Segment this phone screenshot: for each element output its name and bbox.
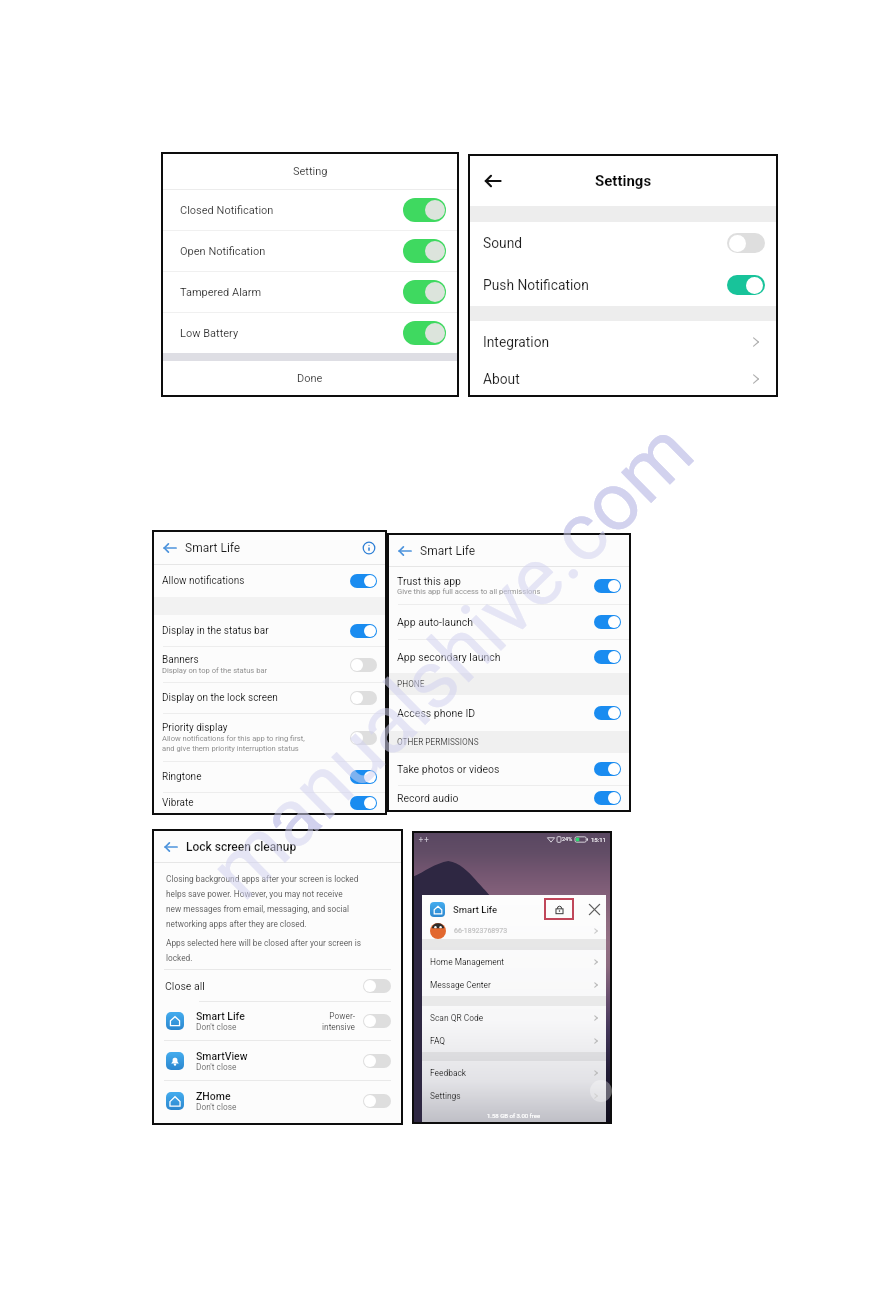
staticText: Record audio: [397, 792, 459, 804]
button[interactable]: Feedback: [422, 1061, 606, 1084]
staticText: 1.58 GB of 3.00 free: [487, 1112, 541, 1119]
staticText: SmartView: [196, 1050, 248, 1062]
button[interactable]: [363, 1094, 391, 1108]
button[interactable]: Back: [163, 839, 179, 855]
button[interactable]: Push Notification: [470, 264, 776, 306]
staticText: Closed Notification: [180, 204, 403, 217]
staticText: Done: [297, 372, 323, 385]
button[interactable]: Info: [362, 541, 376, 555]
button[interactable]: [350, 658, 377, 672]
button[interactable]: ZHome: [154, 1081, 401, 1120]
staticText: ZHome: [196, 1090, 231, 1102]
button[interactable]: [350, 770, 377, 784]
button[interactable]: [350, 691, 377, 705]
button[interactable]: About: [470, 363, 776, 395]
staticText: Feedback: [430, 1068, 592, 1078]
button[interactable]: [350, 731, 377, 745]
button[interactable]: [403, 280, 446, 304]
button[interactable]: Access phone ID: [389, 695, 629, 731]
button[interactable]: SmartView: [154, 1041, 401, 1080]
button[interactable]: Display in the status bar: [154, 615, 385, 646]
staticText: Ringtone: [162, 771, 202, 783]
staticText: Settings: [430, 1091, 592, 1101]
staticText: Settings: [595, 172, 652, 190]
button[interactable]: Message Center: [422, 974, 606, 996]
staticText: Setting: [293, 165, 328, 178]
button[interactable]: Tampered Alarm: [163, 272, 457, 312]
button[interactable]: Vibrate: [154, 793, 385, 813]
staticText: App secondary launch: [397, 651, 501, 663]
staticText: Sound: [483, 235, 727, 251]
staticText: PHONE: [397, 679, 425, 689]
staticText: 24%: [562, 836, 573, 842]
button[interactable]: Banners: [154, 647, 385, 682]
button[interactable]: Settings: [422, 1084, 606, 1107]
staticText: Display in the status bar: [162, 625, 269, 637]
button[interactable]: Closed Notification: [163, 190, 457, 230]
staticText: Smart Life: [453, 904, 498, 915]
button[interactable]: Scan QR Code: [422, 1006, 606, 1029]
button[interactable]: Sound: [470, 222, 776, 264]
button[interactable]: Take photos or videos: [389, 753, 629, 785]
staticText: Display on the lock screen: [162, 692, 278, 704]
button[interactable]: Display on the lock screen: [154, 683, 385, 713]
button[interactable]: Record audio: [389, 786, 629, 810]
button[interactable]: Allow notifications: [154, 565, 385, 597]
button[interactable]: [727, 275, 765, 295]
staticText: Take photos or videos: [397, 763, 500, 775]
staticText: Power- intensive: [322, 1011, 355, 1032]
staticText: Allow notifications for this app to ring…: [162, 734, 305, 753]
button[interactable]: Close all: [154, 970, 401, 1001]
button[interactable]: [594, 650, 621, 664]
button[interactable]: [403, 198, 446, 222]
staticText: Low Battery: [180, 327, 403, 340]
staticText: Don't close: [196, 1062, 237, 1072]
staticText: Closing background apps after your scree…: [166, 874, 359, 929]
button[interactable]: App auto-launch: [389, 605, 629, 639]
button[interactable]: [594, 791, 621, 805]
staticText: Scan QR Code: [430, 1013, 592, 1023]
staticText: Don't close: [196, 1102, 237, 1112]
button[interactable]: [594, 762, 621, 776]
staticText: Smart Life: [196, 1010, 245, 1022]
staticText: Trust this app: [397, 575, 461, 587]
staticText: Lock screen cleanup: [186, 840, 297, 854]
button[interactable]: Lock: [544, 898, 574, 920]
button[interactable]: FAQ: [422, 1029, 606, 1052]
button[interactable]: Open Notification: [163, 231, 457, 271]
button[interactable]: [594, 615, 621, 629]
button[interactable]: [350, 574, 377, 588]
staticText: FAQ: [430, 1036, 592, 1046]
button[interactable]: Back: [483, 171, 503, 191]
button[interactable]: Done: [163, 361, 457, 395]
button[interactable]: [363, 1014, 391, 1028]
button[interactable]: [594, 579, 621, 593]
button[interactable]: Back: [397, 543, 413, 559]
staticText: Priority display: [162, 722, 228, 734]
button[interactable]: [350, 796, 377, 810]
staticText: Home Management: [430, 957, 592, 967]
button[interactable]: [363, 1054, 391, 1068]
button[interactable]: Low Battery: [163, 313, 457, 353]
button[interactable]: [403, 239, 446, 263]
button[interactable]: Trust this app: [389, 567, 629, 604]
button[interactable]: Smart Life: [154, 1002, 401, 1040]
button[interactable]: Home Management: [422, 950, 606, 974]
button[interactable]: App secondary launch: [389, 640, 629, 673]
staticText: Don't close: [196, 1022, 237, 1032]
staticText: Allow notifications: [162, 575, 245, 587]
button[interactable]: Ringtone: [154, 762, 385, 792]
staticText: Give this app full access to all permiss…: [397, 587, 541, 596]
staticText: App auto-launch: [397, 616, 474, 628]
staticText: Open Notification: [180, 245, 403, 258]
button[interactable]: Close: [587, 902, 602, 917]
button[interactable]: [594, 706, 621, 720]
button[interactable]: [727, 233, 765, 253]
button[interactable]: Integration: [470, 321, 776, 363]
button[interactable]: [363, 979, 391, 993]
staticText: Integration: [483, 334, 748, 350]
button[interactable]: [350, 624, 377, 638]
button[interactable]: [403, 321, 446, 345]
button[interactable]: Back: [162, 540, 178, 556]
button[interactable]: Priority display: [154, 714, 385, 761]
